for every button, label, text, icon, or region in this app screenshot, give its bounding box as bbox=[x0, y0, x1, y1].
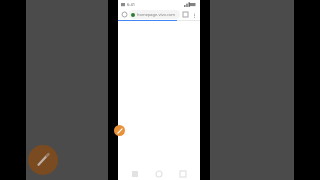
staticText: 6:41 bbox=[127, 2, 135, 7]
button[interactable]: Home bbox=[120, 10, 129, 19]
button[interactable]: Back bbox=[128, 167, 142, 180]
button[interactable]: Edit bbox=[114, 125, 125, 136]
button[interactable]: homepage.vivo.com bbox=[129, 10, 180, 19]
button[interactable]: Home bbox=[152, 167, 166, 180]
button[interactable]: Draw bbox=[28, 145, 58, 175]
button[interactable]: Recents bbox=[176, 167, 190, 180]
button[interactable]: More options bbox=[190, 11, 198, 19]
staticText: homepage.vivo.com bbox=[137, 12, 176, 17]
button[interactable]: Tabs bbox=[181, 10, 190, 19]
